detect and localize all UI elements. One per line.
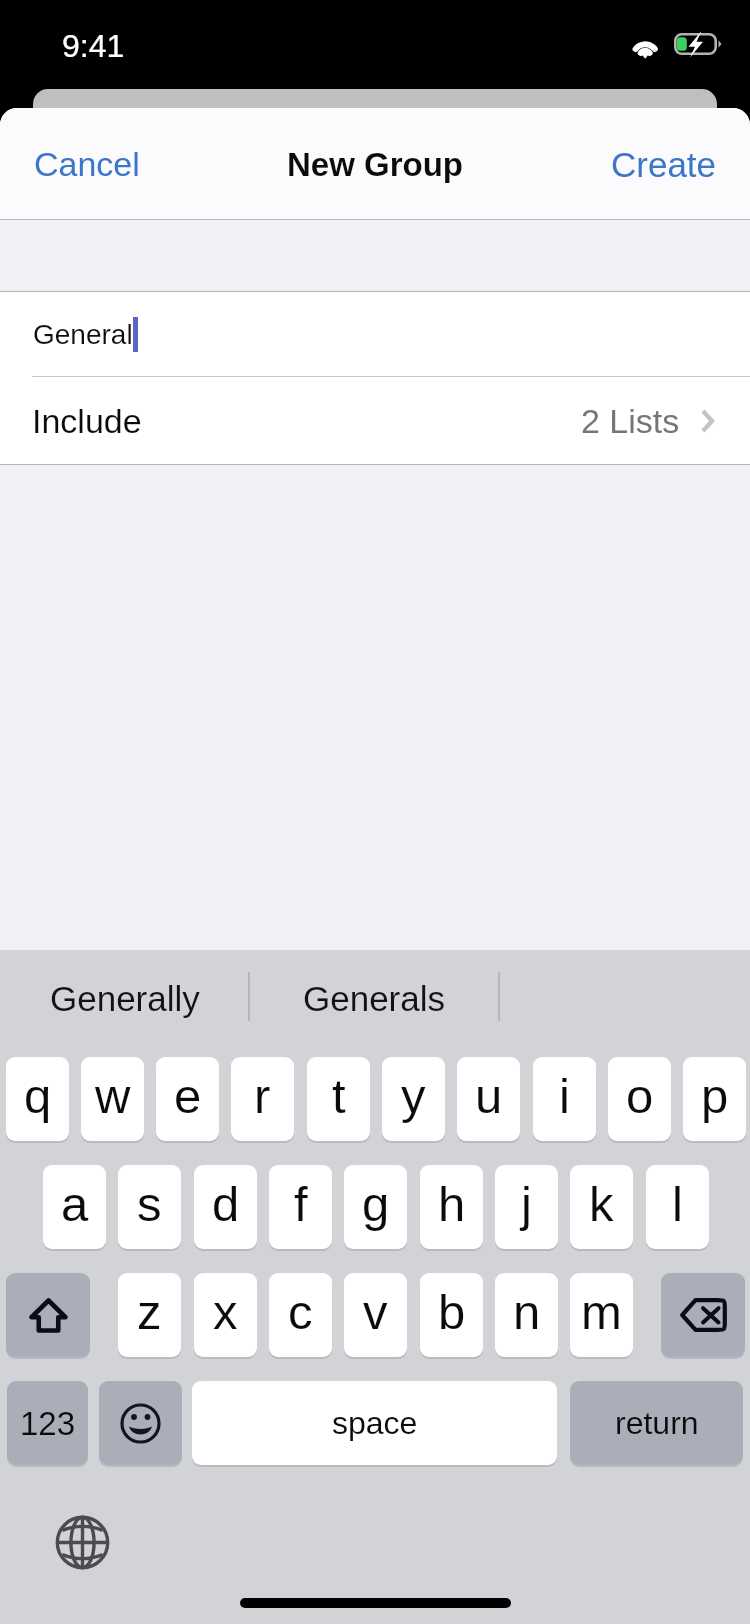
staticText: w (95, 1069, 131, 1124)
button[interactable]: return (570, 1381, 743, 1465)
button[interactable]: r (231, 1057, 294, 1141)
staticText: r (254, 1069, 271, 1124)
button[interactable]: Create (590, 131, 738, 198)
staticText: New Group (287, 146, 464, 183)
staticText: h (438, 1177, 466, 1232)
staticText: Create (611, 145, 717, 184)
staticText: return (615, 1405, 699, 1441)
staticText: g (362, 1177, 390, 1232)
button[interactable]: q (6, 1057, 69, 1141)
button[interactable]: c (269, 1273, 332, 1357)
staticText: 123 (20, 1405, 76, 1442)
button[interactable]: n (495, 1273, 558, 1357)
button[interactable]: Change keyboard language (54, 1514, 111, 1571)
button[interactable]: t (307, 1057, 370, 1141)
button[interactable]: z (118, 1273, 181, 1357)
staticText: t (332, 1069, 346, 1124)
button[interactable]: d (194, 1165, 257, 1249)
staticText: b (438, 1285, 466, 1340)
button[interactable]: e (156, 1057, 219, 1141)
button[interactable]: space (192, 1381, 557, 1465)
staticText: General (33, 319, 133, 350)
staticText: d (212, 1177, 240, 1232)
staticText: z (137, 1285, 162, 1340)
button[interactable]: s (118, 1165, 181, 1249)
staticText: Generals (303, 979, 446, 1018)
button[interactable]: v (344, 1273, 407, 1357)
staticText: c (288, 1285, 313, 1340)
staticText: l (672, 1177, 683, 1232)
staticText: 9:41 (62, 28, 125, 64)
button[interactable]: Generally (0, 950, 249, 1047)
staticText: f (294, 1177, 308, 1232)
button[interactable]: b (420, 1273, 483, 1357)
staticText: y (401, 1069, 426, 1124)
staticText: Generally (50, 979, 200, 1018)
button[interactable]: Backspace (661, 1273, 745, 1357)
staticText: space (332, 1405, 418, 1441)
button[interactable]: Generals (250, 950, 499, 1047)
staticText: u (475, 1069, 503, 1124)
button[interactable]: i (533, 1057, 596, 1141)
button[interactable]: x (194, 1273, 257, 1357)
button[interactable]: Cancel (12, 131, 162, 197)
staticText: p (701, 1069, 729, 1124)
button[interactable]: f (269, 1165, 332, 1249)
button[interactable]: j (495, 1165, 558, 1249)
staticText: 2 Lists (581, 402, 680, 440)
button[interactable]: Include (0, 377, 750, 464)
button[interactable]: w (81, 1057, 144, 1141)
button[interactable]: Emoji keyboard (99, 1381, 182, 1465)
button[interactable]: a (43, 1165, 106, 1249)
staticText: Cancel (34, 145, 140, 183)
button[interactable]: o (608, 1057, 671, 1141)
button[interactable]: 123 (7, 1381, 88, 1465)
staticText: x (213, 1285, 238, 1340)
staticText: v (363, 1285, 388, 1340)
button[interactable]: g (344, 1165, 407, 1249)
staticText: o (626, 1069, 654, 1124)
button[interactable]: k (570, 1165, 633, 1249)
staticText: q (24, 1069, 52, 1124)
staticText: Include (32, 402, 142, 440)
staticText: k (589, 1177, 614, 1232)
button[interactable]: m (570, 1273, 633, 1357)
button[interactable]: p (683, 1057, 746, 1141)
staticText: a (61, 1177, 89, 1232)
staticText: j (521, 1177, 532, 1232)
button[interactable]: Shift (6, 1273, 90, 1357)
staticText: m (581, 1285, 622, 1340)
staticText: e (174, 1069, 202, 1124)
button[interactable]: u (457, 1057, 520, 1141)
button[interactable]: General (0, 292, 750, 376)
button[interactable]: y (382, 1057, 445, 1141)
staticText: s (137, 1177, 162, 1232)
button[interactable]: h (420, 1165, 483, 1249)
staticText: i (559, 1069, 570, 1124)
staticText: n (513, 1285, 541, 1340)
button[interactable]: l (646, 1165, 709, 1249)
